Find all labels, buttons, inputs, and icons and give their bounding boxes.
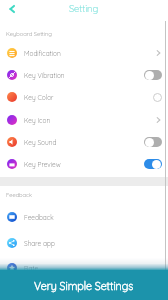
button[interactable]: Modification	[0, 42, 168, 64]
staticText: Modification	[24, 49, 61, 57]
button[interactable]: Open	[153, 115, 163, 125]
button[interactable]: Key Color	[0, 86, 168, 108]
button[interactable]: Feedback	[0, 206, 168, 228]
staticText: Setting	[69, 3, 99, 15]
staticText: Key Icon	[24, 116, 51, 124]
staticText: Very Simple Settings	[34, 279, 134, 292]
staticText: Key Sound	[24, 138, 57, 146]
button[interactable]: Rate	[0, 257, 168, 279]
button[interactable]: Share app	[0, 232, 168, 254]
button[interactable]: Off	[143, 69, 163, 81]
button[interactable]: Off	[143, 136, 163, 148]
button[interactable]: Open	[153, 48, 163, 58]
button[interactable]: Key Vibration	[0, 64, 168, 86]
staticText: Feedback	[24, 213, 54, 221]
staticText: Share app	[24, 239, 55, 247]
button[interactable]: Key Icon	[0, 109, 168, 131]
staticText: Key Preview	[24, 160, 61, 168]
button[interactable]: Key Sound	[0, 131, 168, 153]
button[interactable]: Key Preview	[0, 153, 168, 175]
staticText: Keyboard Setting	[6, 30, 52, 37]
staticText: Key Vibration	[24, 71, 65, 79]
staticText: Key Color	[24, 93, 54, 101]
staticText: Rate	[24, 264, 39, 272]
button[interactable]: On	[143, 158, 163, 170]
button[interactable]: Very Simple Settings	[0, 270, 168, 300]
button[interactable]: Back	[4, 1, 20, 17]
staticText: Feedback	[6, 191, 33, 198]
button[interactable]: Pick key colour	[152, 92, 163, 103]
